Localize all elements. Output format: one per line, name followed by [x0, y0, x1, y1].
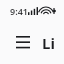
button[interactable]: Menu: [8, 28, 38, 58]
staticText: Library: [42, 33, 56, 53]
staticText: 9:41: [10, 5, 28, 17]
